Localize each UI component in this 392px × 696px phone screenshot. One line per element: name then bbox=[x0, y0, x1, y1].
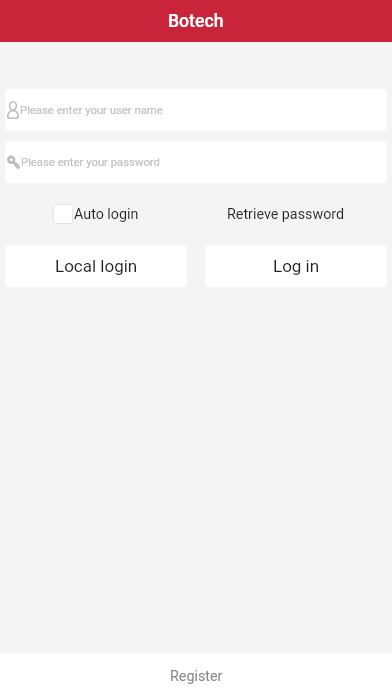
button[interactable]: Auto login bbox=[53, 204, 139, 224]
button[interactable]: Register bbox=[0, 653, 392, 696]
other: User name bbox=[7, 101, 19, 119]
staticText: Register bbox=[170, 668, 223, 685]
staticText: Retrieve password bbox=[227, 206, 345, 223]
staticText: Please enter your password bbox=[21, 156, 160, 169]
button[interactable]: Retrieve password bbox=[227, 206, 345, 223]
other: Password bbox=[7, 155, 20, 169]
button[interactable]: Local login bbox=[5, 245, 187, 287]
staticText: Please enter your user name bbox=[20, 104, 163, 117]
button[interactable]: Log in bbox=[205, 245, 387, 287]
button[interactable]: Password bbox=[5, 141, 387, 183]
staticText: Local login bbox=[55, 256, 138, 276]
staticText: Auto login bbox=[74, 206, 139, 223]
button[interactable]: User name bbox=[5, 89, 387, 131]
staticText: Log in bbox=[273, 256, 320, 276]
staticText: Botech bbox=[168, 11, 224, 32]
